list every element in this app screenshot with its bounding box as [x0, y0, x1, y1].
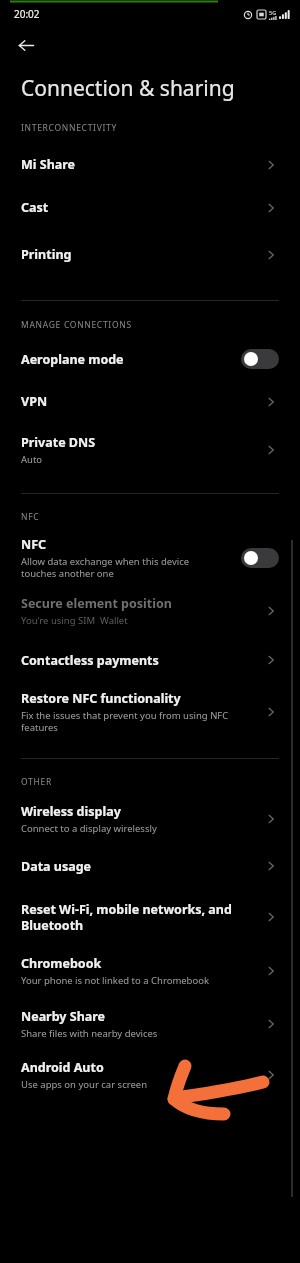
- button[interactable]: Secure element position: [0, 585, 300, 637]
- button[interactable]: NFC toggle: [241, 548, 279, 568]
- button[interactable]: Contactless payments: [0, 637, 300, 683]
- staticText: Your phone is not linked to a Chromebook: [21, 974, 210, 987]
- button[interactable]: Restore NFC functionality: [0, 683, 300, 741]
- staticText: Private DNS: [21, 434, 96, 451]
- button[interactable]: Cast: [0, 184, 300, 231]
- button[interactable]: Chromebook: [0, 944, 300, 997]
- staticText: Data usage: [21, 858, 92, 875]
- staticText: Aeroplane mode: [21, 351, 124, 368]
- staticText: Secure element position: [21, 595, 172, 612]
- staticText: Printing: [21, 246, 72, 263]
- button[interactable]: Private DNS: [0, 425, 300, 475]
- staticText: Allow data exchange when this device tou…: [21, 555, 190, 580]
- staticText: Nearby Share: [21, 1008, 106, 1025]
- button[interactable]: Aeroplane mode: [0, 340, 300, 378]
- staticText: MANAGE CONNECTIONS: [21, 319, 132, 331]
- staticText: Contactless payments: [21, 652, 159, 669]
- staticText: NFC: [21, 511, 40, 523]
- staticText: Reset Wi-Fi, mobile networks, and Blueto…: [21, 901, 232, 934]
- button[interactable]: Wireless display: [0, 796, 300, 842]
- button[interactable]: Printing: [0, 231, 300, 278]
- staticText: Share files with nearby devices: [21, 1027, 158, 1040]
- staticText: Wireless display: [21, 803, 121, 820]
- staticText: 5G: [269, 9, 277, 16]
- staticText: Connect to a display wirelessly: [21, 822, 157, 835]
- staticText: INTERCONNECTIVITY: [21, 122, 117, 134]
- staticText: NFC: [21, 536, 47, 553]
- staticText: Mi Share: [21, 156, 76, 173]
- staticText: Restore NFC functionality: [21, 690, 181, 707]
- button[interactable]: Nearby Share: [0, 997, 300, 1050]
- staticText: OTHER: [21, 776, 52, 788]
- button[interactable]: Mi Share: [0, 145, 300, 184]
- staticText: Chromebook: [21, 955, 102, 972]
- button[interactable]: Android Auto: [0, 1050, 300, 1100]
- staticText: You're using SIM Wallet: [21, 614, 128, 627]
- staticText: Connection & sharing: [21, 74, 235, 103]
- staticText: VPN: [21, 393, 48, 410]
- button[interactable]: VPN: [0, 378, 300, 425]
- button[interactable]: Aeroplane mode toggle: [241, 349, 279, 369]
- staticText: Android Auto: [21, 1059, 104, 1076]
- button[interactable]: Back: [12, 31, 40, 59]
- staticText: Auto: [21, 453, 43, 466]
- staticText: Use apps on your car screen: [21, 1078, 148, 1091]
- staticText: 20:02: [14, 7, 40, 21]
- staticText: Fix the issues that prevent you from usi…: [21, 709, 229, 734]
- staticText: Cast: [21, 199, 49, 216]
- button[interactable]: NFC: [0, 531, 300, 585]
- button[interactable]: Data usage: [0, 842, 300, 890]
- button[interactable]: Reset Wi-Fi, mobile networks, and Blueto…: [0, 890, 300, 944]
